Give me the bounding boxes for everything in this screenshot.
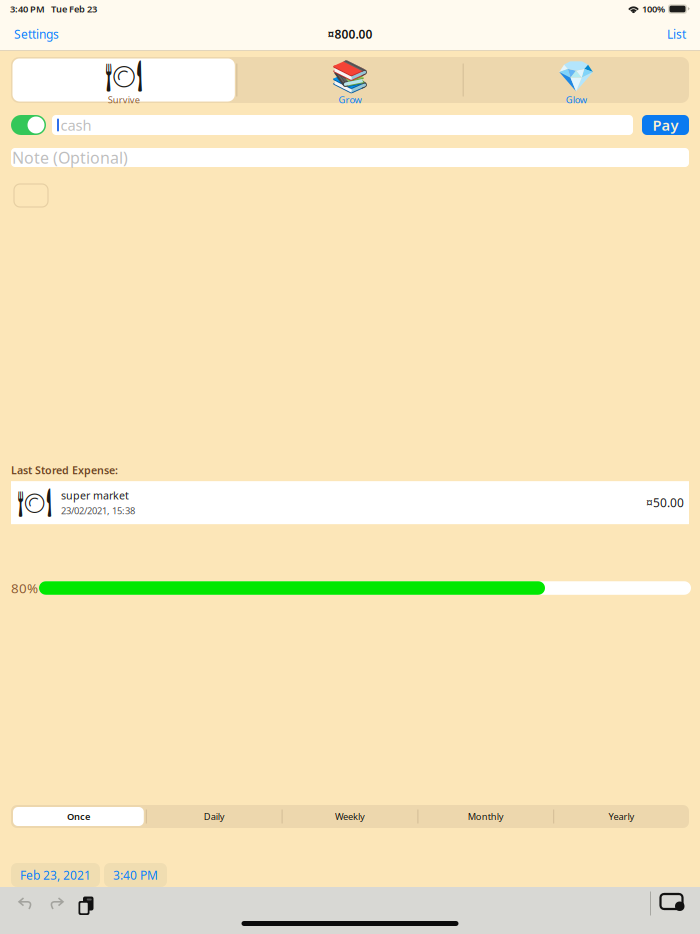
staticText: 3:40 PM (10, 3, 45, 15)
button[interactable]: Pay with cash (11, 115, 46, 135)
button[interactable]: Pay (642, 115, 689, 135)
button[interactable]: 🍽 (11, 57, 236, 103)
button[interactable]: Yearly (554, 805, 689, 828)
staticText: 📚 (331, 58, 369, 93)
button[interactable]: Settings (14, 19, 71, 49)
button[interactable]: Monthly (418, 805, 553, 828)
button[interactable]: 💎 (464, 57, 689, 103)
staticText: Monthly (468, 810, 504, 823)
staticText: List (667, 26, 686, 42)
button[interactable]: 📚 (237, 57, 463, 103)
staticText: Pay (652, 115, 678, 135)
staticText: 100% (640, 3, 665, 15)
staticText: 🍽 (17, 487, 53, 519)
staticText: Note (Optional) (12, 147, 128, 168)
button[interactable]: List (655, 19, 686, 49)
staticText: Grow (338, 93, 361, 106)
staticText: ¤800.00 (327, 26, 372, 42)
button[interactable]: Feb 23, 2021 (11, 863, 100, 887)
button[interactable]: Undo (12, 888, 41, 918)
button[interactable]: Redo (41, 888, 70, 918)
staticText: 🍽 (104, 58, 143, 93)
button[interactable]: Hide keyboard (651, 888, 688, 918)
staticText: Daily (204, 810, 225, 823)
staticText: Last Stored Expense: (11, 463, 118, 477)
staticText: Weekly (335, 810, 365, 823)
staticText: Glow (566, 93, 587, 106)
button[interactable]: Once (11, 805, 146, 828)
staticText: Once (67, 810, 90, 823)
staticText: 23/02/2021, 15:38 (61, 505, 135, 517)
button[interactable]: Paste (70, 888, 99, 919)
staticText: Yearly (609, 810, 635, 823)
staticText: Tue Feb 23 (45, 3, 97, 15)
button[interactable]: Attach receipt photo (14, 184, 48, 207)
staticText: ¤50.00 (646, 495, 684, 511)
button[interactable]: 3:40 PM (104, 863, 167, 887)
staticText: cash (60, 115, 91, 135)
staticText: super market (61, 488, 129, 503)
button[interactable]: 🍽 (11, 481, 689, 524)
staticText: 80% (11, 579, 38, 597)
staticText: 3:40 PM (113, 867, 158, 883)
staticText: Survive (108, 93, 140, 106)
button[interactable]: Daily (147, 805, 282, 828)
staticText: 💎 (557, 58, 595, 93)
button[interactable]: Weekly (283, 805, 417, 828)
staticText: Feb 23, 2021 (20, 867, 91, 883)
staticText: Settings (14, 26, 59, 42)
